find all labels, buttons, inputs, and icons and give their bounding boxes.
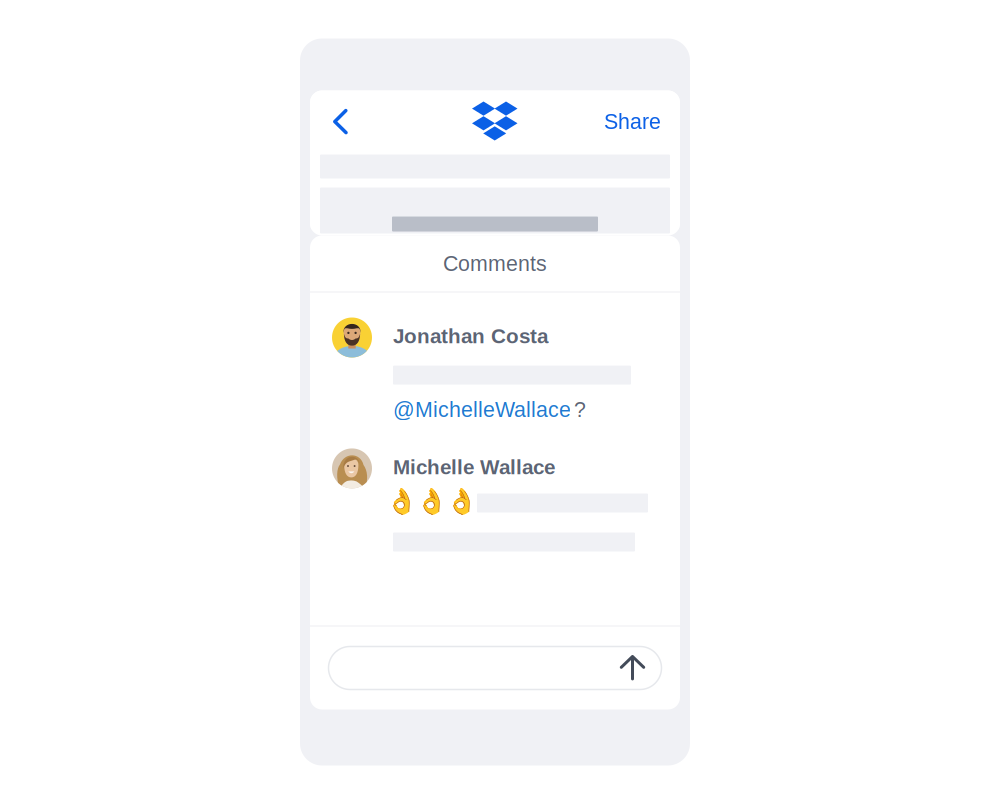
button[interactable]: Back	[310, 90, 380, 152]
staticText: Share	[604, 110, 661, 133]
button[interactable]: Share	[590, 90, 680, 152]
staticText: @MichelleWallace	[393, 398, 571, 421]
staticText: Comments	[443, 252, 547, 275]
staticText: Michelle Wallace	[393, 455, 555, 478]
staticText: ?	[574, 398, 586, 421]
staticText: Jonathan Costa	[393, 324, 548, 348]
staticText: 👌👌👌	[386, 486, 478, 516]
